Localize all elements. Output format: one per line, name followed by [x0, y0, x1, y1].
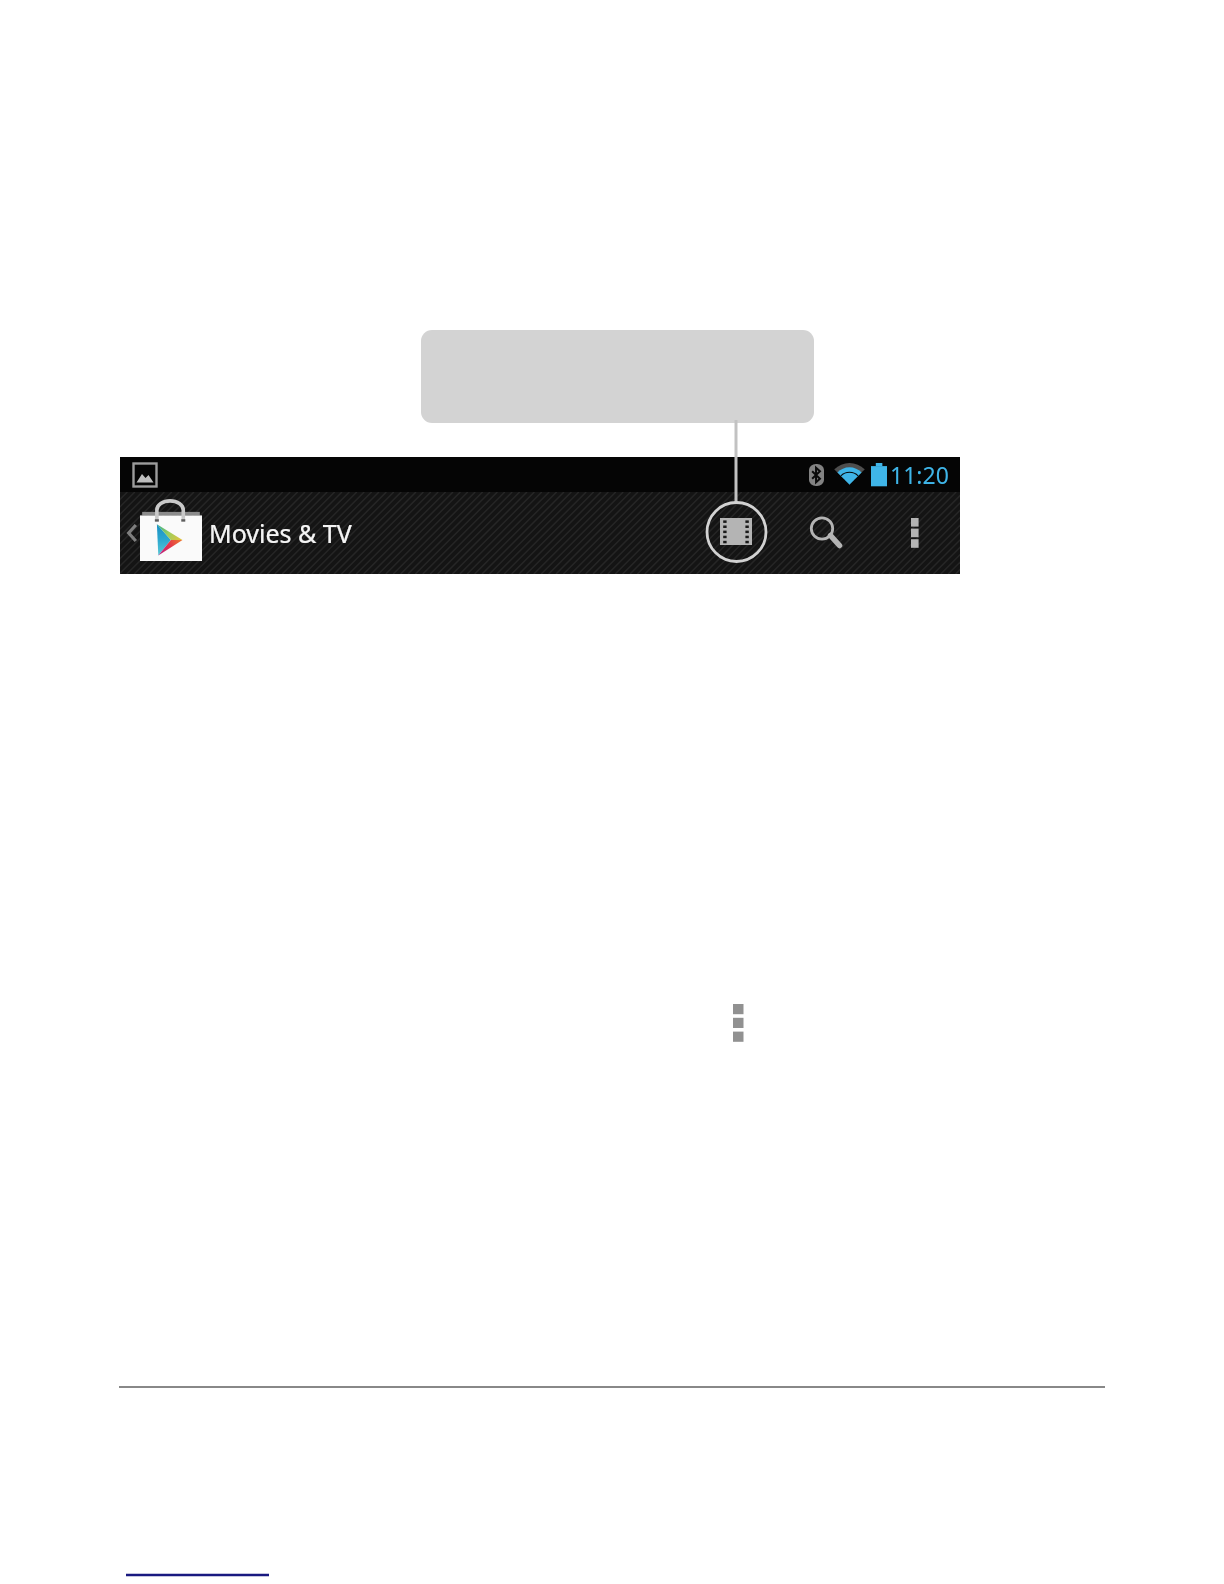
- button[interactable]: More options: [890, 503, 940, 563]
- button[interactable]: Movies & TV: [122, 492, 362, 574]
- staticText: 11:20: [890, 459, 949, 490]
- staticText: Movies & TV: [209, 516, 352, 550]
- button[interactable]: Search: [797, 503, 857, 563]
- button[interactable]: Movies: [706, 501, 766, 561]
- button[interactable]: More options: [723, 998, 754, 1048]
